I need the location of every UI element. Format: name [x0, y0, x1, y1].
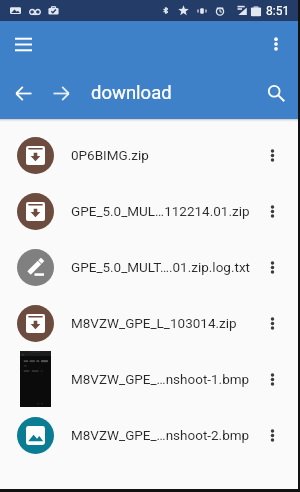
button[interactable]: Navigation menu [7, 28, 39, 60]
button[interactable]: M8VZW_GPE_…nshoot-1.bmp [0, 351, 300, 407]
button[interactable]: GPE_5.0_MULT….01.zip.log.txt [0, 239, 300, 295]
staticText: GPE_5.0_MULT….01.zip.log.txt [71, 259, 254, 275]
button[interactable]: Item options [254, 357, 290, 401]
button[interactable]: M8VZW_GPE_L_103014.zip [0, 295, 300, 351]
staticText: M8VZW_GPE_L_103014.zip [71, 315, 254, 331]
button[interactable]: Item options [254, 133, 290, 177]
button[interactable]: Item options [254, 413, 290, 457]
button[interactable]: 0P6BIMG.zip [0, 127, 300, 183]
button[interactable]: Search [259, 76, 293, 110]
button[interactable]: Back [6, 76, 40, 110]
button[interactable]: Forward [44, 76, 78, 110]
staticText: 8:51 [266, 4, 290, 18]
staticText: 0P6BIMG.zip [71, 147, 254, 163]
button[interactable]: M8VZW_GPE_…nshoot-2.bmp [0, 407, 300, 463]
button[interactable]: More options [261, 29, 291, 59]
staticText: M8VZW_GPE_…nshoot-1.bmp [71, 371, 254, 387]
staticText: M8VZW_GPE_…nshoot-2.bmp [71, 427, 254, 443]
button[interactable]: GPE_5.0_MUL…112214.01.zip [0, 183, 300, 239]
button[interactable]: Item options [254, 245, 290, 289]
staticText: download [91, 82, 172, 104]
button[interactable]: Item options [254, 189, 290, 233]
button[interactable]: Item options [254, 301, 290, 345]
staticText: GPE_5.0_MUL…112214.01.zip [71, 203, 254, 219]
